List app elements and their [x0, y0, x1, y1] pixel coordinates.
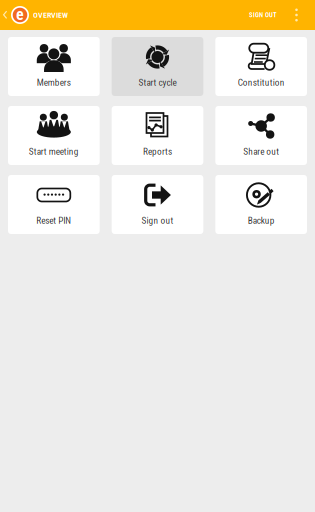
button[interactable]: Reset PIN — [8, 175, 100, 234]
staticText: e — [16, 5, 24, 24]
button[interactable]: Members — [8, 37, 100, 96]
staticText: Share out — [243, 146, 279, 157]
staticText: Constitution — [238, 77, 285, 88]
staticText: OVERVIEW — [33, 10, 68, 20]
button[interactable]: Start cycle — [112, 37, 203, 96]
staticText: SIGN OUT — [249, 11, 277, 19]
staticText: Start cycle — [138, 77, 176, 88]
button[interactable]: Share out — [215, 106, 307, 165]
button[interactable]: e — [0, 0, 68, 30]
staticText: Reset PIN — [36, 215, 71, 226]
button[interactable]: Sign out — [112, 175, 203, 234]
staticText: Reports — [143, 146, 172, 157]
button[interactable]: SIGN OUT — [240, 0, 286, 30]
button[interactable]: Constitution — [215, 37, 307, 96]
staticText: Sign out — [141, 215, 173, 226]
staticText: Backup — [248, 215, 275, 226]
button[interactable]: Reports — [112, 106, 203, 165]
staticText: Start meeting — [29, 146, 79, 157]
button[interactable]: Backup — [215, 175, 307, 234]
button[interactable]: More options — [286, 0, 315, 30]
staticText: Members — [37, 77, 71, 88]
button[interactable]: Start meeting — [8, 106, 100, 165]
